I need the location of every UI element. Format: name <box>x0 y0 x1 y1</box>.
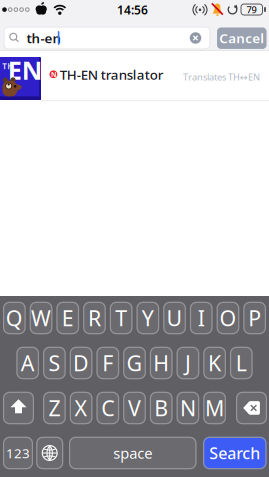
staticText: TH-EN translator <box>60 66 164 83</box>
button[interactable]: Q <box>3 302 26 334</box>
staticText: D <box>73 349 89 377</box>
staticText: Translates TH↔EN <box>183 71 260 83</box>
staticText: H <box>153 349 169 377</box>
staticText: 79 <box>246 3 256 16</box>
button[interactable]: H <box>150 347 172 379</box>
button[interactable]: W <box>30 302 52 334</box>
button[interactable]: Delete <box>236 392 267 424</box>
button[interactable]: L <box>230 347 253 379</box>
staticText: 14:56 <box>117 2 148 18</box>
button[interactable]: X <box>70 392 92 424</box>
staticText: K <box>208 349 221 377</box>
staticText: TH <box>2 61 13 71</box>
button[interactable]: S <box>43 347 66 379</box>
button[interactable]: I <box>190 302 213 334</box>
button[interactable]: Search <box>203 437 267 469</box>
staticText: G <box>126 349 142 377</box>
staticText: W <box>31 304 51 332</box>
staticText: EN <box>8 53 43 87</box>
staticText: Search <box>209 442 260 464</box>
staticText: L <box>236 349 247 377</box>
button[interactable]: R <box>83 302 106 334</box>
staticText: P <box>248 304 261 332</box>
button[interactable]: Z <box>43 392 66 424</box>
staticText: B <box>154 394 168 422</box>
staticText: Z <box>48 394 60 422</box>
staticText: X <box>75 394 88 422</box>
staticText: O <box>219 304 236 332</box>
staticText: S <box>48 349 60 377</box>
button[interactable]: 123 <box>3 437 33 469</box>
staticText: F <box>102 349 113 377</box>
button[interactable]: Clear text <box>188 30 203 45</box>
button[interactable]: N <box>177 392 199 424</box>
staticText: N <box>180 394 196 422</box>
button[interactable]: B <box>150 392 172 424</box>
button[interactable]: P <box>243 302 266 334</box>
button[interactable]: T <box>110 302 132 334</box>
button[interactable]: D <box>70 347 92 379</box>
staticText: space <box>113 443 152 463</box>
button[interactable]: O <box>217 302 239 334</box>
button[interactable]: K <box>203 347 226 379</box>
button[interactable]: Cancel <box>217 27 267 49</box>
staticText: T <box>115 304 127 332</box>
staticText: I <box>198 304 205 332</box>
button[interactable]: J <box>176 347 199 379</box>
button[interactable]: space <box>69 437 196 469</box>
button[interactable]: N <box>0 51 269 100</box>
staticText: U <box>166 304 182 332</box>
button[interactable]: th-en <box>3 26 210 49</box>
button[interactable]: C <box>96 392 119 424</box>
staticText: th-en <box>26 29 61 47</box>
staticText: C <box>101 394 114 422</box>
staticText: N <box>51 70 56 79</box>
button[interactable]: V <box>123 392 146 424</box>
staticText: A <box>21 349 35 377</box>
button[interactable]: Y <box>136 302 159 334</box>
staticText: J <box>185 349 191 377</box>
staticText: Cancel <box>219 29 264 47</box>
button[interactable]: Next keyboard <box>36 437 63 469</box>
staticText: R <box>88 304 101 332</box>
button[interactable]: E <box>56 302 79 334</box>
staticText: Q <box>6 304 23 332</box>
button[interactable]: G <box>123 347 146 379</box>
staticText: M <box>205 394 224 422</box>
button[interactable]: M <box>203 392 226 424</box>
staticText: 123 <box>6 444 30 462</box>
staticText: Y <box>142 304 154 332</box>
staticText: V <box>128 394 141 422</box>
staticText: E <box>62 304 74 332</box>
button[interactable]: U <box>163 302 186 334</box>
button[interactable]: A <box>16 347 39 379</box>
button[interactable]: F <box>96 347 119 379</box>
button[interactable]: Shift <box>3 392 34 424</box>
